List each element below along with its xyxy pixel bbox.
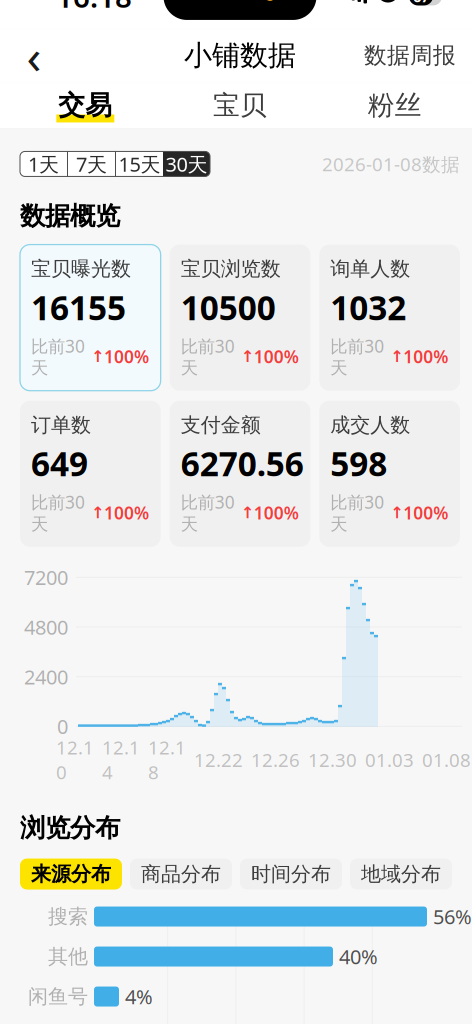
staticText: 12.18: [148, 735, 186, 784]
staticText: 40%: [339, 943, 378, 970]
button[interactable]: 时间分布: [240, 858, 342, 889]
button[interactable]: 1天: [20, 151, 67, 176]
button[interactable]: 支付金额: [170, 401, 310, 547]
staticText: ↑: [384, 504, 403, 522]
staticText: 01.03: [365, 747, 414, 772]
staticText: 100%: [104, 501, 149, 524]
button[interactable]: 来源分布: [20, 858, 122, 889]
staticText: 7天: [76, 151, 107, 177]
staticText: 12.26: [251, 747, 300, 772]
staticText: 比前30天: [181, 334, 235, 379]
button[interactable]: 商品分布: [130, 858, 232, 889]
staticText: ↑: [384, 347, 403, 366]
staticText: 598: [330, 441, 387, 486]
button[interactable]: 宝贝浏览数: [170, 245, 310, 391]
staticText: 12.10: [56, 735, 94, 784]
button[interactable]: 宝贝曝光数: [20, 245, 161, 391]
staticText: 1天: [28, 151, 59, 177]
staticText: 12.22: [194, 747, 243, 772]
staticText: 2026-01-08数据: [322, 152, 460, 176]
staticText: 浏览分布: [20, 812, 120, 843]
staticText: 比前30天: [330, 334, 384, 379]
staticText: 649: [31, 441, 88, 486]
staticText: 地域分布: [361, 862, 441, 886]
staticText: 100%: [403, 345, 448, 368]
staticText: 100%: [403, 501, 448, 524]
staticText: 10500: [181, 285, 276, 329]
button[interactable]: 交易: [8, 82, 163, 128]
button[interactable]: 地域分布: [350, 858, 452, 889]
staticText: 时间分布: [251, 862, 331, 886]
staticText: 搜索: [48, 904, 88, 929]
staticText: 16:18: [56, 0, 132, 16]
button[interactable]: 宝贝: [163, 82, 317, 128]
staticText: 宝贝: [213, 89, 267, 122]
staticText: ‹: [26, 24, 41, 87]
staticText: 0: [57, 713, 68, 740]
staticText: 小铺数据: [184, 38, 296, 73]
staticText: 67: [413, 0, 429, 6]
staticText: 比前30天: [31, 490, 85, 535]
staticText: 比前30天: [31, 334, 85, 379]
staticText: 12.30: [308, 747, 357, 772]
staticText: ↑: [235, 347, 254, 366]
staticText: 100%: [254, 501, 299, 524]
staticText: 来源分布: [31, 862, 111, 886]
staticText: 宝贝浏览数: [181, 257, 281, 281]
staticText: 15天: [118, 151, 160, 177]
staticText: 宝贝曝光数: [31, 257, 131, 281]
staticText: 16155: [31, 285, 126, 329]
staticText: 7200: [24, 564, 68, 591]
staticText: 12.14: [102, 735, 140, 784]
staticText: 30天: [165, 151, 207, 177]
staticText: 粉丝: [368, 89, 422, 122]
button[interactable]: 数据周报: [354, 32, 466, 78]
staticText: 4800: [24, 614, 68, 640]
staticText: 订单数: [31, 413, 91, 437]
button[interactable]: 30天: [163, 151, 210, 176]
staticText: 2400: [24, 663, 68, 690]
staticText: 01.08: [422, 747, 471, 772]
button[interactable]: 7天: [68, 151, 115, 176]
staticText: 6270.56: [181, 441, 304, 486]
staticText: 成交人数: [330, 413, 410, 437]
staticText: 交易: [58, 89, 112, 122]
button[interactable]: 询单人数: [319, 245, 460, 391]
staticText: 比前30天: [181, 490, 235, 535]
staticText: 支付金额: [181, 413, 261, 437]
staticText: 56%: [433, 903, 472, 930]
staticText: 数据周报: [364, 41, 456, 69]
staticText: 1032: [330, 285, 406, 329]
staticText: ↑: [85, 347, 104, 366]
staticText: ↑: [235, 504, 254, 522]
staticText: 闲鱼号: [28, 984, 88, 1009]
staticText: 商品分布: [141, 862, 221, 886]
button[interactable]: Back: [10, 32, 58, 78]
button[interactable]: 15天: [116, 151, 163, 176]
button[interactable]: 粉丝: [317, 82, 472, 128]
button[interactable]: 成交人数: [319, 401, 460, 547]
staticText: 4%: [125, 983, 153, 1010]
button[interactable]: 订单数: [20, 401, 161, 547]
staticText: 100%: [104, 345, 149, 368]
staticText: 数据概览: [20, 200, 120, 232]
staticText: 比前30天: [330, 490, 384, 535]
staticText: ↑: [85, 504, 104, 522]
staticText: 询单人数: [330, 257, 410, 281]
staticText: 其他: [48, 944, 88, 969]
staticText: 100%: [254, 345, 299, 368]
